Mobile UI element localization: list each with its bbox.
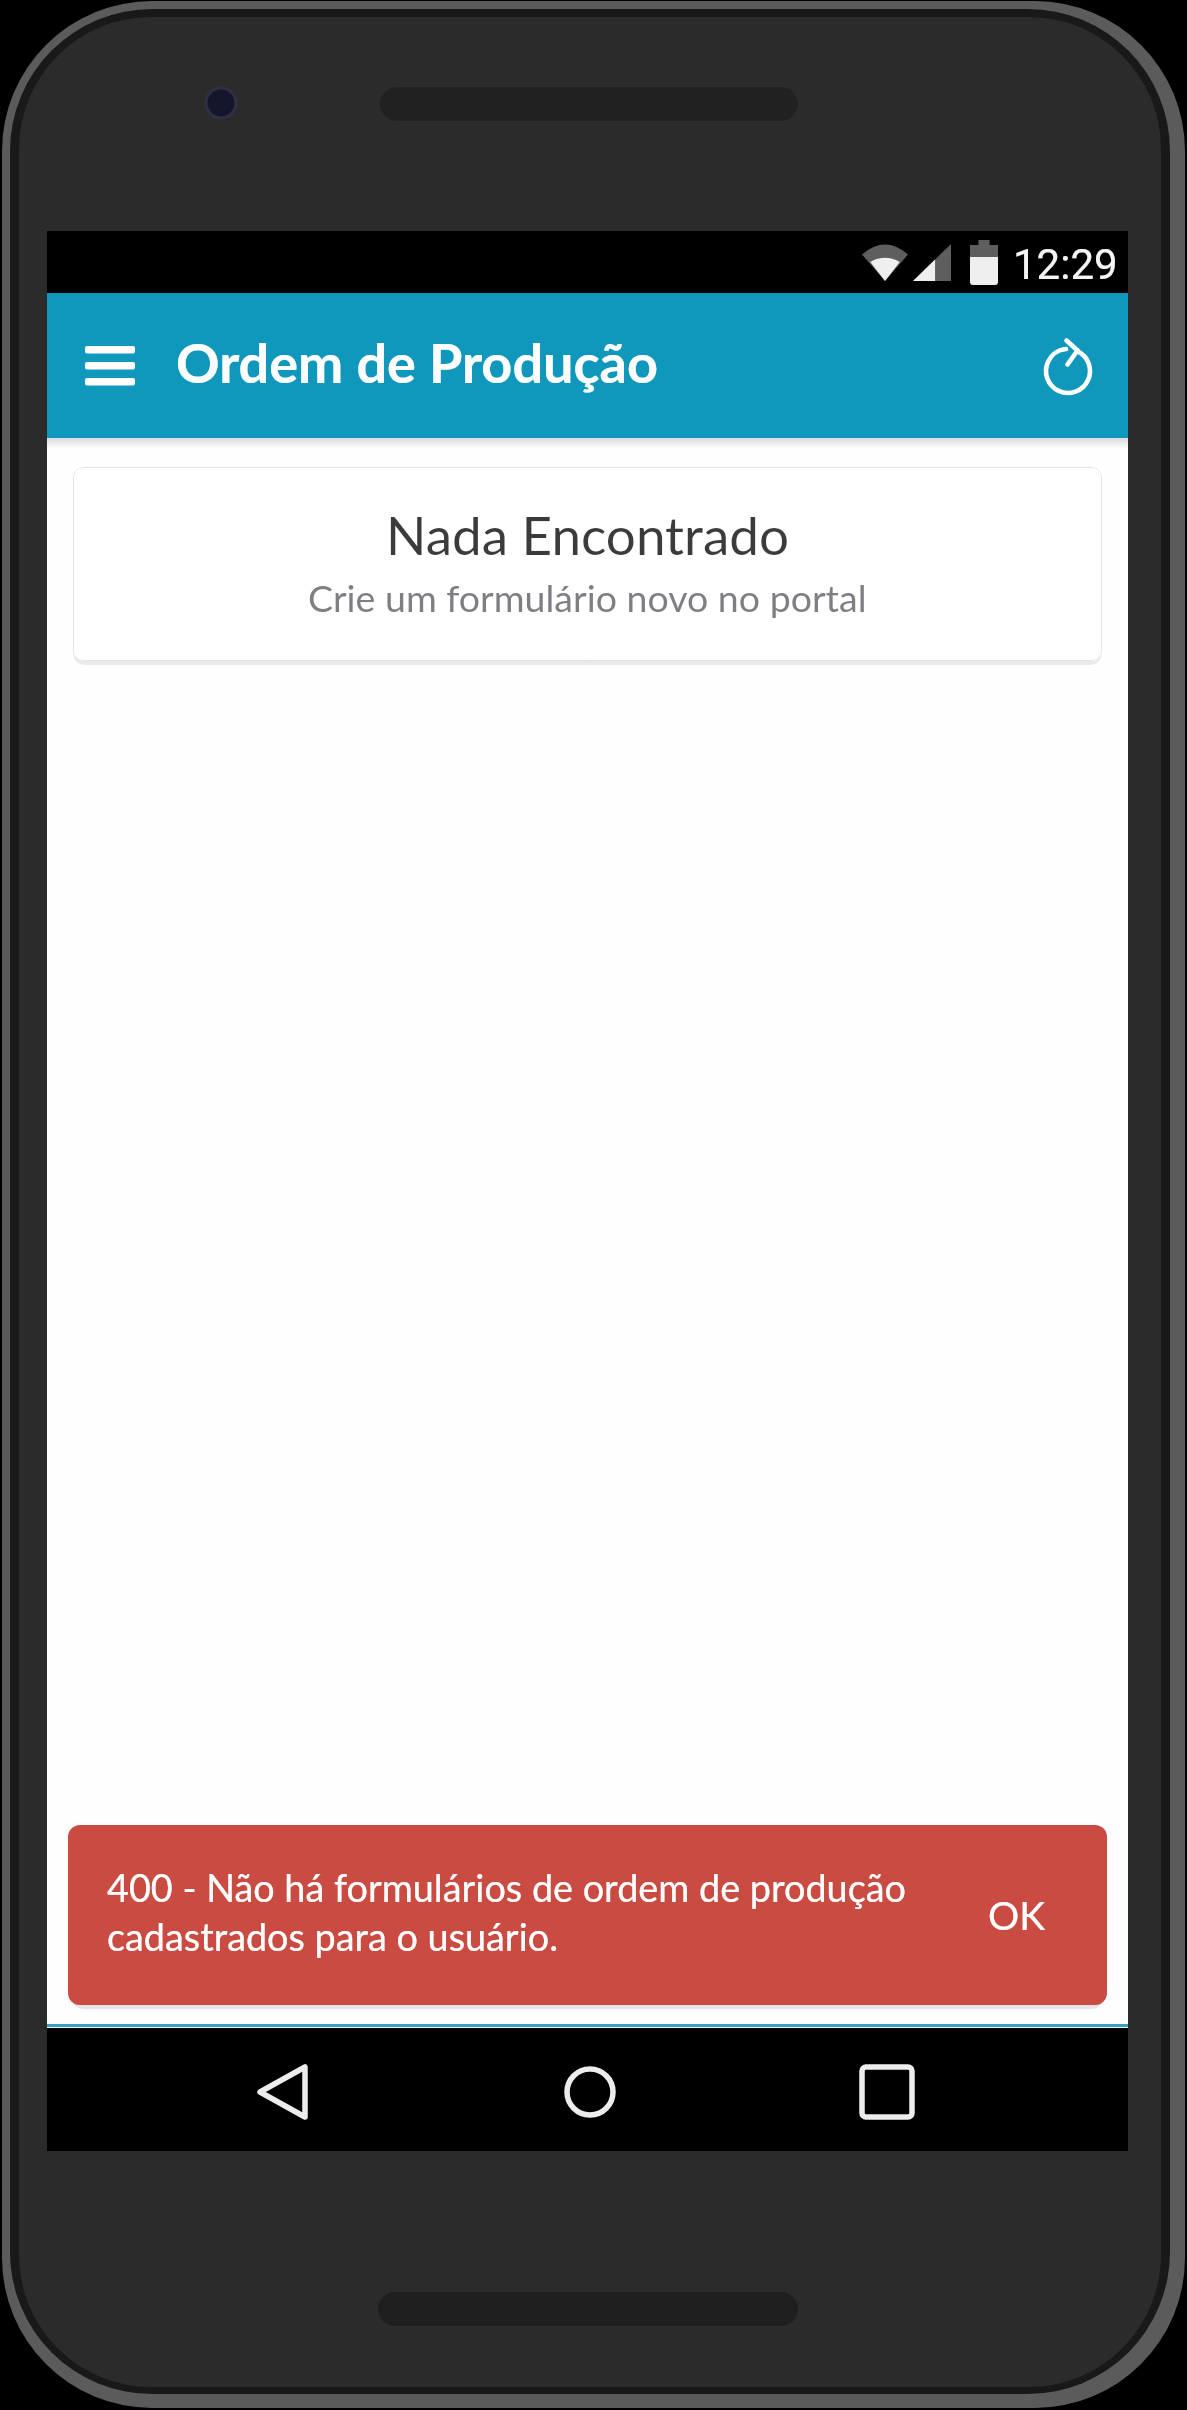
staticText: Crie um formulário novo no portal [308,575,867,620]
button[interactable]: Nada Encontrado [73,467,1102,661]
button[interactable] [537,2039,642,2144]
button[interactable]: OK [988,1892,1046,1939]
button[interactable]: 400 - Não há formulários de ordem de pro… [68,1825,1107,2005]
staticText: 12:29 [1013,240,1118,289]
staticText: Ordem de Produção [176,330,659,395]
staticText: 400 - Não há formulários de ordem de pro… [107,1865,906,1959]
staticText: OK [988,1892,1046,1939]
button[interactable] [834,2039,939,2144]
button[interactable] [1036,339,1100,403]
button[interactable] [67,329,153,403]
button[interactable] [232,2039,337,2144]
staticText: Nada Encontrado [386,503,790,567]
